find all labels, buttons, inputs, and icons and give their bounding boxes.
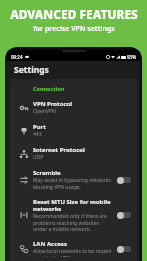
staticText: 93% [127,54,136,60]
staticText: Settings [14,64,49,76]
staticText: 09:24 [11,54,23,60]
button[interactable]: Reset MTU Size for mobile networks [10,194,137,236]
staticText: Reset MTU Size for mobile networks [33,198,112,213]
button[interactable]: Reset MTU Size for mobile networks [116,210,132,220]
button[interactable]: Port [10,119,137,142]
staticText: LAN Access [33,240,67,248]
staticText: VPN Protocol [33,100,73,108]
button[interactable]: Internet Protocol [10,142,137,165]
staticText: Allow local networks to be routed outsid… [33,248,112,257]
button[interactable]: LAN Access [116,244,132,254]
staticText: 443 [33,131,42,138]
staticText: ADVANCED FEATURES [10,6,138,22]
staticText: May assist in bypassing networks blockin… [33,177,112,190]
button[interactable]: Scramble [10,165,137,194]
staticText: Scramble [33,169,61,177]
staticText: Connection [33,85,65,92]
staticText: UDP [33,154,44,161]
button[interactable]: Scramble [116,175,132,185]
staticText: Internet Protocol [33,146,85,154]
button[interactable]: LAN Access [10,236,137,261]
staticText: Port [33,123,46,131]
staticText: Recommended only if there are problems r… [33,213,112,232]
button[interactable]: VPN Protocol [10,96,137,119]
staticText: for precise VPN settings [33,24,115,34]
staticText: OpenVPN [33,108,56,115]
